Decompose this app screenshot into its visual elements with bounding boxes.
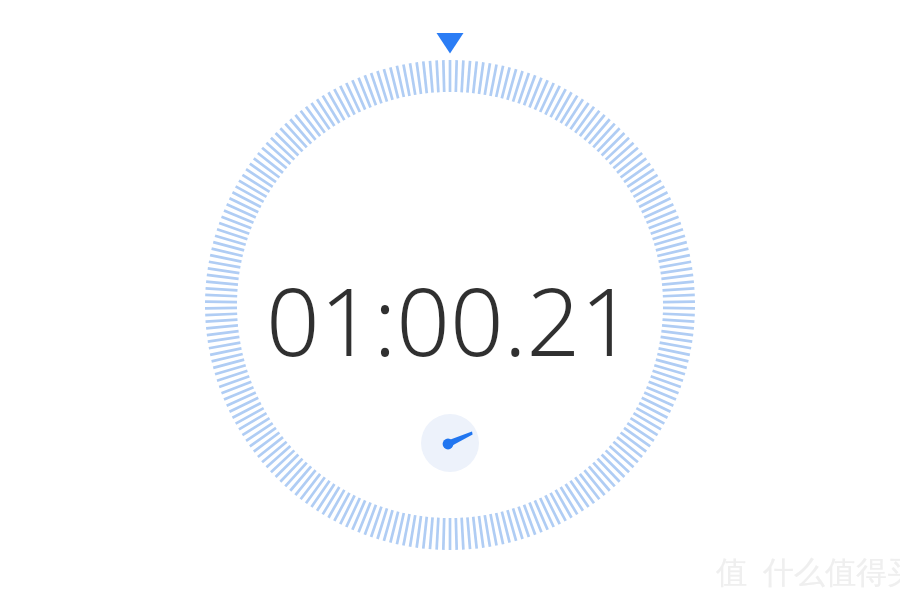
- staticText: 值 什么值得买: [716, 550, 900, 592]
- button[interactable]: 01:00.21: [150, 256, 750, 368]
- button[interactable]: Timer handle: [421, 414, 479, 472]
